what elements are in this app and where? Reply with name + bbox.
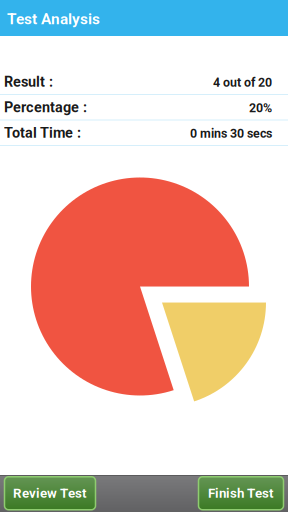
staticText: Result : [4,73,53,90]
staticText: Finish Test [208,485,274,501]
button[interactable]: Review Test [4,477,95,510]
staticText: Total Time : [4,124,81,141]
staticText: 4 out of 20 [213,75,272,90]
staticText: Percentage : [4,99,87,116]
staticText: 20% [249,101,272,115]
staticText: 0 mins 30 secs [190,126,272,141]
staticText: Review Test [13,485,87,501]
button[interactable]: Finish Test [198,477,283,510]
staticText: Test Analysis [7,10,100,28]
